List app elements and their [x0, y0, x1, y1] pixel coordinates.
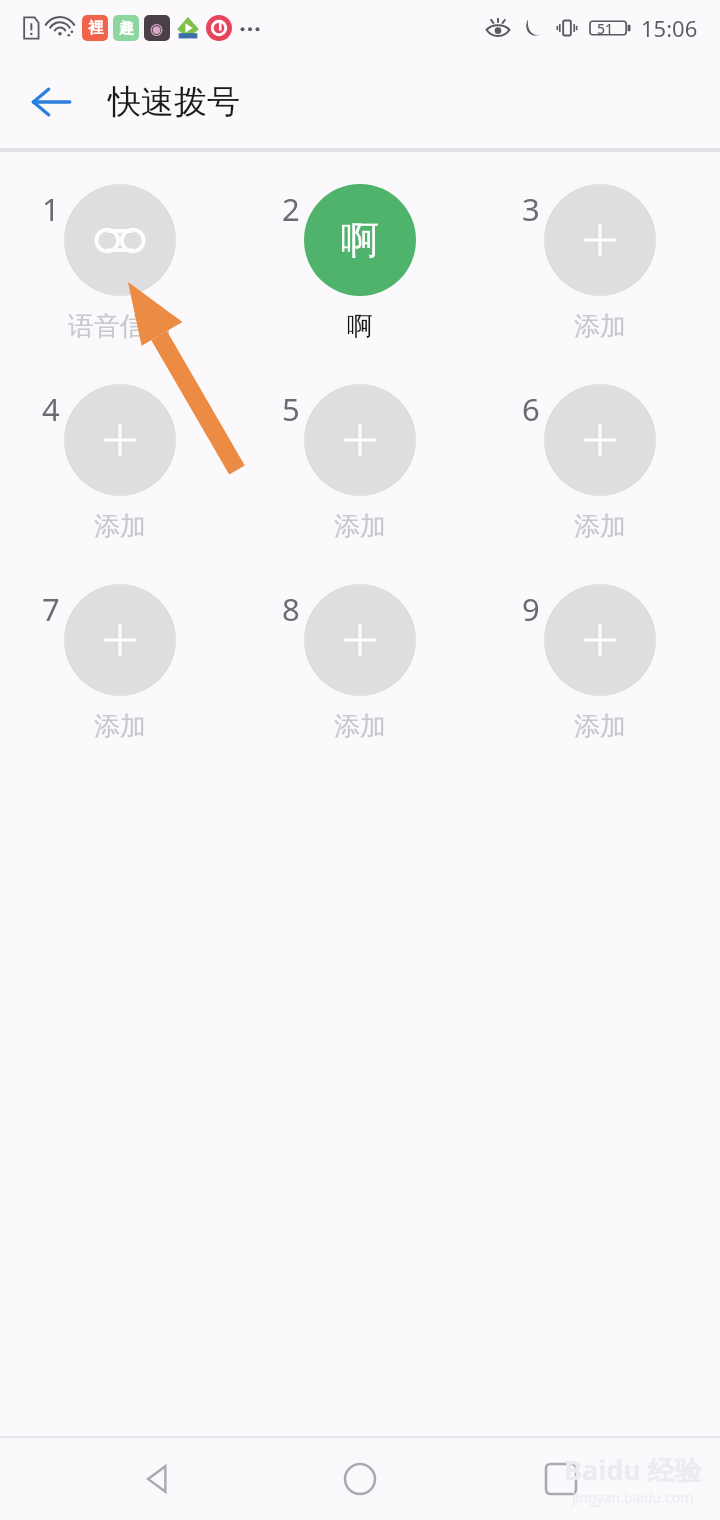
staticText: 6 — [522, 388, 540, 430]
staticText: 添加 — [334, 510, 386, 543]
staticText: Baidu 经验 — [564, 1451, 702, 1488]
staticText: 添加 — [94, 510, 146, 543]
staticText: 啊 — [347, 310, 373, 343]
button[interactable]: 4 — [0, 368, 240, 568]
staticText: 趣 — [119, 19, 134, 38]
staticText: 51 — [597, 19, 614, 38]
staticText: 9 — [522, 588, 540, 630]
button[interactable]: Back — [117, 1438, 201, 1520]
staticText: 7 — [42, 588, 60, 630]
button[interactable]: 5 — [240, 368, 480, 568]
button[interactable]: 8 — [240, 568, 480, 768]
staticText: ◉ — [150, 20, 164, 37]
button[interactable]: 9 — [480, 568, 720, 768]
staticText: 添加 — [574, 510, 626, 543]
staticText: 添加 — [94, 710, 146, 743]
staticText: 1 — [42, 188, 60, 230]
staticText: 添加 — [334, 710, 386, 743]
button[interactable]: 1 — [0, 168, 240, 368]
button[interactable]: 6 — [480, 368, 720, 568]
button[interactable]: 2 — [240, 168, 480, 368]
staticText: 快速拨号 — [108, 81, 240, 123]
staticText: 裡 — [88, 19, 103, 38]
staticText: 15:06 — [641, 13, 698, 43]
staticText: 添加 — [574, 310, 626, 343]
staticText: 5 — [282, 388, 300, 430]
staticText: 2 — [282, 188, 300, 230]
staticText: 4 — [42, 388, 60, 430]
staticText: 语音信箱 — [68, 310, 172, 343]
staticText: 添加 — [574, 710, 626, 743]
button[interactable]: Home — [318, 1438, 402, 1520]
staticText: 3 — [522, 188, 540, 230]
button[interactable]: 3 — [480, 168, 720, 368]
staticText: 啊 — [341, 216, 379, 264]
staticText: jingyan.baidu.com — [572, 1488, 694, 1507]
button[interactable]: Back — [20, 71, 82, 133]
button[interactable]: 7 — [0, 568, 240, 768]
staticText: 8 — [282, 588, 300, 630]
button[interactable]: Recent apps — [519, 1438, 603, 1520]
